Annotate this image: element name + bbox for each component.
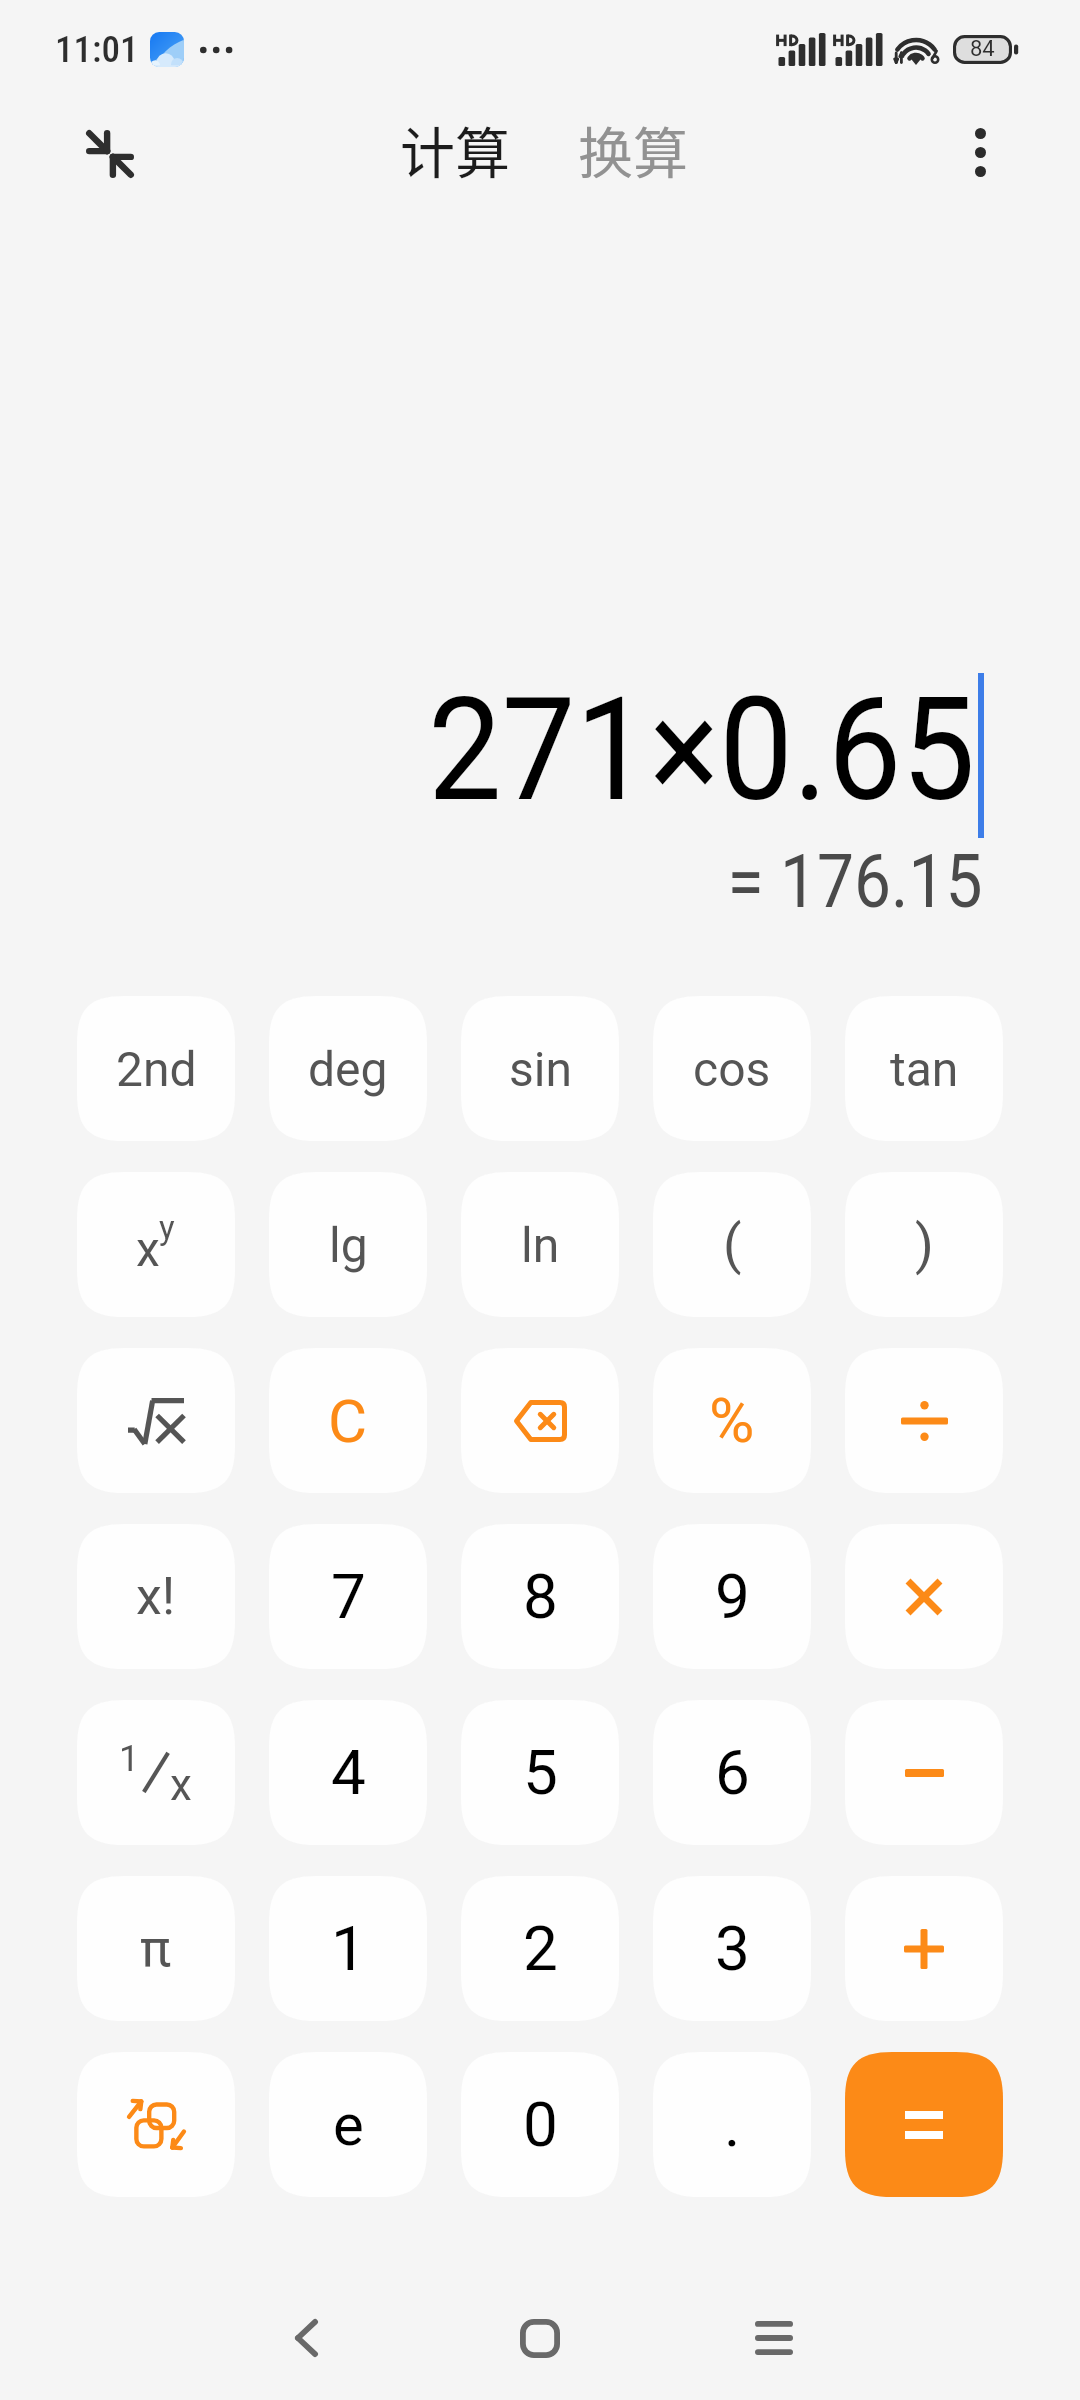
staticText: tan [890,1041,959,1097]
staticText: x! [136,1566,176,1627]
button[interactable]: 3 [653,1876,811,2021]
button[interactable]: backspace [461,1348,619,1493]
staticText: ⁄ [140,1732,172,1814]
button[interactable]: 9 [653,1524,811,1669]
button[interactable]: Home [480,2278,600,2398]
button[interactable]: 4 [269,1700,427,1845]
staticText: ln [521,1217,560,1273]
staticText: 2nd [116,1041,197,1097]
button[interactable]: 2 [461,1876,619,2021]
button[interactable]: deg [269,996,427,1141]
button[interactable]: 计算 [392,97,519,201]
staticText: 6 [715,1736,750,1809]
button[interactable]: x! [77,1524,235,1669]
staticText: deg [308,1041,388,1097]
button[interactable]: 6 [653,1700,811,1845]
button[interactable]: Recents [714,2278,834,2398]
staticText: lg [329,1217,368,1273]
button[interactable]: % [653,1348,811,1493]
staticText: 4 [331,1736,366,1809]
staticText: 1 [331,1912,366,1985]
button[interactable]: More options [934,106,1026,198]
staticText: 7 [331,1560,366,1633]
staticText: π [140,1918,172,1979]
staticText: 9 [715,1560,750,1633]
staticText: % [709,1384,755,1457]
staticText: = 176.15 [728,838,983,925]
staticText: 271×0.65 [428,667,976,833]
staticText: 0 [523,2088,558,2161]
button[interactable]: lg [269,1172,427,1317]
staticText: 3 [715,1912,750,1985]
staticText: x [170,1759,192,1811]
button[interactable]: Back [246,2278,366,2398]
staticText: x [136,1221,160,1277]
button[interactable]: x to the power of y [77,1172,235,1317]
staticText: . [724,2088,741,2161]
button[interactable]: minus [845,1700,1003,1845]
staticText: 5 [523,1736,558,1809]
staticText: 计算 [400,109,511,189]
staticText: 8 [523,1560,558,1633]
button[interactable]: 0 [461,2052,619,2197]
button[interactable]: 7 [269,1524,427,1669]
button[interactable]: e [269,2052,427,2197]
button[interactable]: π [77,1876,235,2021]
button[interactable]: plus [845,1876,1003,2021]
button[interactable]: ) [845,1172,1003,1317]
staticText: 换算 [578,109,689,189]
staticText: cos [693,1041,771,1097]
button[interactable]: 8 [461,1524,619,1669]
button[interactable]: Collapse [64,108,156,200]
staticText: 84 [970,36,995,62]
button[interactable]: 换算 [570,97,697,201]
button[interactable]: one divided by x [77,1700,235,1845]
button[interactable]: divide [845,1348,1003,1493]
staticText: 1 [119,1738,140,1780]
button[interactable]: 2nd [77,996,235,1141]
button[interactable]: multiply [845,1524,1003,1669]
button[interactable]: unit convert [77,2052,235,2197]
staticText: C [328,1386,368,1456]
button[interactable]: 5 [461,1700,619,1845]
staticText: ) [915,1213,934,1276]
staticText: ( [723,1213,742,1276]
button[interactable]: . [653,2052,811,2197]
button[interactable]: equals [845,2052,1003,2197]
button[interactable]: sin [461,996,619,1141]
button[interactable]: cos [653,996,811,1141]
staticText: y [159,1208,175,1247]
button[interactable]: ( [653,1172,811,1317]
button[interactable]: square root [77,1348,235,1493]
staticText: sin [509,1041,572,1097]
button[interactable]: ln [461,1172,619,1317]
button[interactable]: C [269,1348,427,1493]
staticText: 2 [523,1912,558,1985]
staticText: e [333,2091,364,2159]
button[interactable]: tan [845,996,1003,1141]
staticText: 11:01 [55,28,139,71]
button[interactable]: 1 [269,1876,427,2021]
